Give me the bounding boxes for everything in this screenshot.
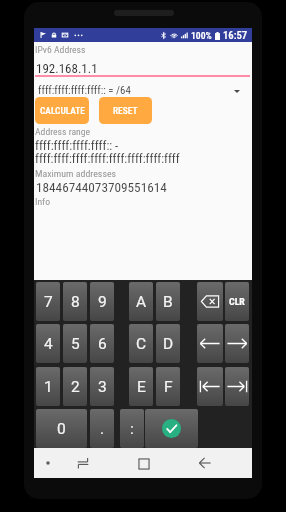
button[interactable]: Move to end [225,367,249,406]
staticText: 6 [98,335,107,353]
button[interactable]: : [120,409,144,448]
button[interactable]: 4 [36,324,60,363]
staticText: C [136,335,147,353]
button[interactable]: 1 [36,367,60,406]
button[interactable]: 8 [63,282,87,321]
button[interactable]: D [156,324,180,363]
staticText: CLR [229,296,245,308]
staticText: Maximum addresses [35,168,117,180]
staticText: 1 [44,378,53,396]
staticText: B [163,293,173,311]
staticText: 2 [71,378,80,396]
button[interactable]: Menu [38,453,58,473]
button[interactable]: CLR [225,282,249,321]
staticText: 3 [98,378,107,396]
staticText: 9 [98,293,107,311]
button[interactable]: Back [195,453,215,473]
staticText: ffff:ffff:ffff:ffff:: - [35,138,119,153]
button[interactable]: 7 [36,282,60,321]
button[interactable]: CALCULATE [35,97,89,124]
button[interactable]: Move to start [197,367,223,406]
staticText: ffff:ffff:ffff:ffff:: = /64 [38,84,131,97]
staticText: 8 [71,293,80,311]
button[interactable]: 6 [90,324,114,363]
button[interactable]: Cursor right [225,324,249,363]
button[interactable]: 0 [36,409,87,448]
staticText: 100% [191,30,212,41]
button[interactable]: . [90,409,114,448]
staticText: RESET [113,105,138,116]
staticText: : [130,420,134,438]
staticText: Address range [35,126,91,137]
staticText: 5 [71,335,80,353]
button[interactable]: 9 [90,282,114,321]
staticText: ffff:ffff:ffff:ffff:ffff:ffff:ffff:ffff [35,152,180,166]
button[interactable]: B [156,282,180,321]
staticText: A [136,293,147,311]
staticText: 4 [44,335,53,353]
button[interactable]: C [129,324,153,363]
staticText: IPv6 Address [35,44,86,55]
button[interactable]: F [156,367,180,406]
button[interactable]: RESET [99,97,152,124]
button[interactable]: A [129,282,153,321]
button[interactable]: ffff:ffff:ffff:ffff:: = /64 [34,83,251,97]
button[interactable]: 2 [63,367,87,406]
button[interactable]: E [129,367,153,406]
staticText: . [100,420,105,438]
staticText: 192.168.1.1 [36,61,98,76]
button[interactable]: Recent apps [73,453,93,473]
staticText: 7 [44,293,53,311]
staticText: 16:57 [223,29,248,42]
button[interactable]: Enter [145,409,198,448]
staticText: 0 [57,420,66,438]
staticText: CALCULATE [40,105,85,116]
button[interactable]: Home [134,454,154,474]
button[interactable]: 5 [63,324,87,363]
staticText: F [164,378,173,396]
button[interactable]: Backspace [197,282,223,321]
staticText: Info [35,196,51,207]
staticText: D [163,335,174,353]
staticText: E [137,378,146,396]
staticText: 18446744073709551614 [36,180,167,196]
button[interactable]: 3 [90,367,114,406]
button[interactable]: Cursor left [197,324,223,363]
